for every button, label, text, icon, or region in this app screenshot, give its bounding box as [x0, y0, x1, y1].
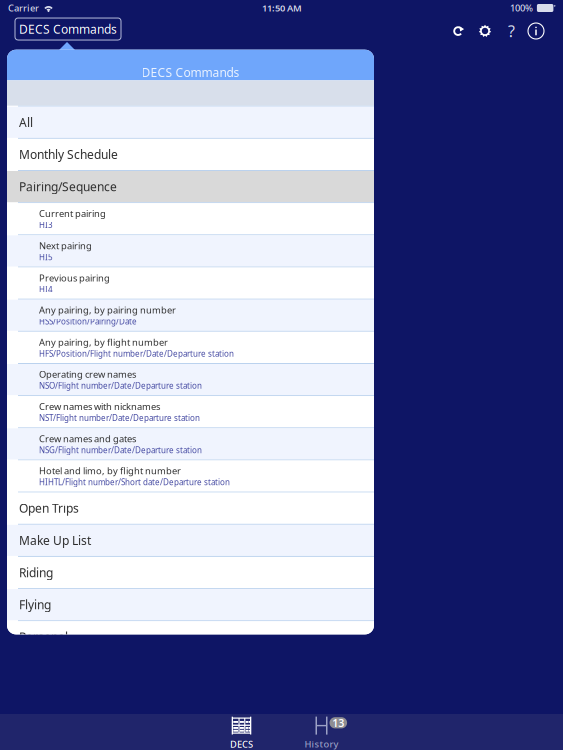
staticText: Any pairing, by flight number — [39, 336, 168, 348]
button[interactable]: DECS — [201, 714, 281, 750]
button[interactable]: DECS Commands — [15, 18, 121, 40]
button[interactable]: Make Up List — [7, 525, 374, 556]
staticText: NSO/Flight number/Date/Departure station — [39, 380, 202, 391]
staticText: Carrier — [8, 2, 39, 14]
staticText: Make Up List — [19, 532, 91, 548]
button[interactable]: Info — [525, 20, 547, 42]
staticText: Current pairing — [39, 207, 106, 220]
button[interactable]: Pairing/Sequence — [7, 171, 374, 202]
staticText: DECS Commands — [141, 64, 239, 80]
button[interactable]: Next pairing — [7, 235, 374, 266]
staticText: 13 — [332, 716, 344, 730]
button[interactable]: Monthly Schedule — [7, 139, 374, 170]
staticText: DECS Commands — [19, 21, 117, 37]
staticText: Previous pairing — [39, 272, 110, 284]
staticText: 100% — [510, 2, 533, 14]
button[interactable]: Operating crew names — [7, 364, 374, 395]
staticText: Flying — [19, 597, 51, 613]
staticText: HI4 — [39, 284, 53, 295]
button[interactable]: Personal — [7, 621, 374, 652]
staticText: HI3 — [39, 220, 53, 230]
staticText: NST/Flight number/Date/Departure station — [39, 413, 200, 423]
staticText: 11:50 AM — [262, 2, 302, 14]
staticText: Next pairing — [39, 239, 92, 252]
button[interactable]: Any pairing, by pairing number — [7, 300, 374, 331]
staticText: DECS — [230, 738, 253, 750]
staticText: Any pairing, by pairing number — [39, 304, 176, 316]
staticText: Open Trips — [19, 500, 79, 516]
staticText: HI5 — [39, 252, 53, 262]
button[interactable]: Settings — [474, 20, 496, 42]
staticText: All — [19, 114, 33, 130]
button[interactable]: Flying — [7, 589, 374, 620]
button[interactable]: Refresh — [448, 20, 470, 42]
button[interactable]: Hotel and limo, by flight number — [7, 460, 374, 492]
button[interactable]: Help — [500, 20, 522, 42]
staticText: History — [304, 738, 338, 750]
staticText: Monthly Schedule — [19, 146, 118, 162]
staticText: ? — [508, 20, 515, 42]
button[interactable]: Previous pairing — [7, 267, 374, 299]
button[interactable]: All — [7, 107, 374, 138]
button[interactable]: Open Trips — [7, 493, 374, 524]
staticText: Crew names with nicknames — [39, 400, 160, 413]
staticText: Personal — [19, 629, 68, 645]
staticText: HSS/Position/Pairing/Date — [39, 316, 137, 327]
staticText: HIHTL/Flight number/Short date/Departure… — [39, 477, 230, 487]
button[interactable]: Any pairing, by flight number — [7, 332, 374, 363]
staticText: Riding — [19, 565, 53, 580]
staticText: Operating crew names — [39, 368, 136, 380]
staticText: HFS/Position/Flight number/Date/Departur… — [39, 348, 234, 359]
button[interactable]: 13 — [281, 714, 361, 750]
staticText: Pairing/Sequence — [19, 179, 117, 194]
staticText: Crew names and gates — [39, 432, 136, 445]
button[interactable]: Crew names and gates — [7, 428, 374, 459]
button[interactable]: Crew names with nicknames — [7, 396, 374, 427]
staticText: Hotel and limo, by flight number — [39, 464, 181, 477]
button[interactable]: Riding — [7, 557, 374, 588]
staticText: NSG/Flight number/Date/Departure station — [39, 445, 202, 455]
button[interactable]: Current pairing — [7, 203, 374, 234]
